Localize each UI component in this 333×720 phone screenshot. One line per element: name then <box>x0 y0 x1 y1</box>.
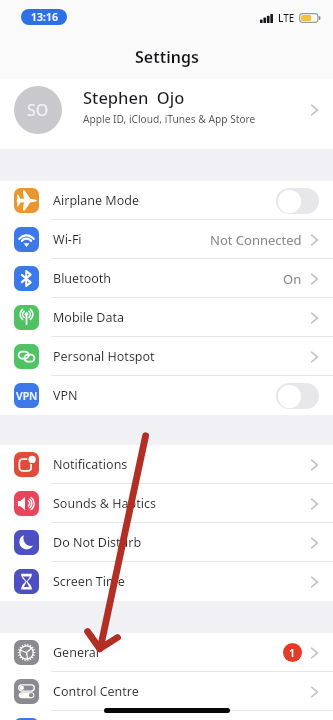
button[interactable]: Personal Hotspot <box>0 337 333 376</box>
button[interactable]: Wi-Fi <box>0 220 333 259</box>
button[interactable]: Time 13:16 <box>21 9 67 25</box>
staticText: Sounds & Haptics <box>53 495 156 512</box>
staticText: 13:16 <box>31 10 58 24</box>
staticText: VPN <box>16 389 38 403</box>
button[interactable]: Screen Time <box>0 562 333 601</box>
staticText: Apple ID, iCloud, iTunes & App Store <box>83 112 256 126</box>
button[interactable]: VPN <box>0 376 333 415</box>
staticText: Mobile Data <box>53 309 125 326</box>
staticText: Stephen Ojo <box>83 86 185 108</box>
staticText: Control Centre <box>53 683 139 700</box>
staticText: LTE <box>278 11 295 25</box>
button[interactable]: Sounds & Haptics <box>0 484 333 523</box>
button[interactable]: SO <box>0 79 333 149</box>
button[interactable]: General <box>0 633 333 672</box>
staticText: On <box>283 270 302 288</box>
button[interactable]: Notifications <box>0 445 333 484</box>
button[interactable]: Bluetooth <box>0 259 333 298</box>
button[interactable]: Airplane Mode <box>0 181 333 220</box>
button[interactable]: Airplane Mode off <box>276 188 319 214</box>
staticText: General <box>53 644 100 661</box>
staticText: Do Not Disturb <box>53 534 142 551</box>
staticText: Not Connected <box>210 231 302 249</box>
staticText: VPN <box>53 387 78 404</box>
button[interactable]: Control Centre <box>0 672 333 711</box>
staticText: Notifications <box>53 456 128 473</box>
staticText: SO <box>27 99 49 121</box>
button[interactable]: Mobile Data <box>0 298 333 337</box>
staticText: Bluetooth <box>53 270 112 287</box>
staticText: Airplane Mode <box>53 192 139 209</box>
button[interactable]: Do Not Disturb <box>0 523 333 562</box>
button[interactable]: Display & Brightness <box>0 711 333 720</box>
staticText: Screen Time <box>53 573 125 590</box>
staticText: Personal Hotspot <box>53 348 155 365</box>
button[interactable]: VPN off <box>276 383 319 409</box>
staticText: Settings <box>135 46 199 68</box>
staticText: 1 <box>289 645 296 660</box>
staticText: Wi-Fi <box>53 231 82 248</box>
